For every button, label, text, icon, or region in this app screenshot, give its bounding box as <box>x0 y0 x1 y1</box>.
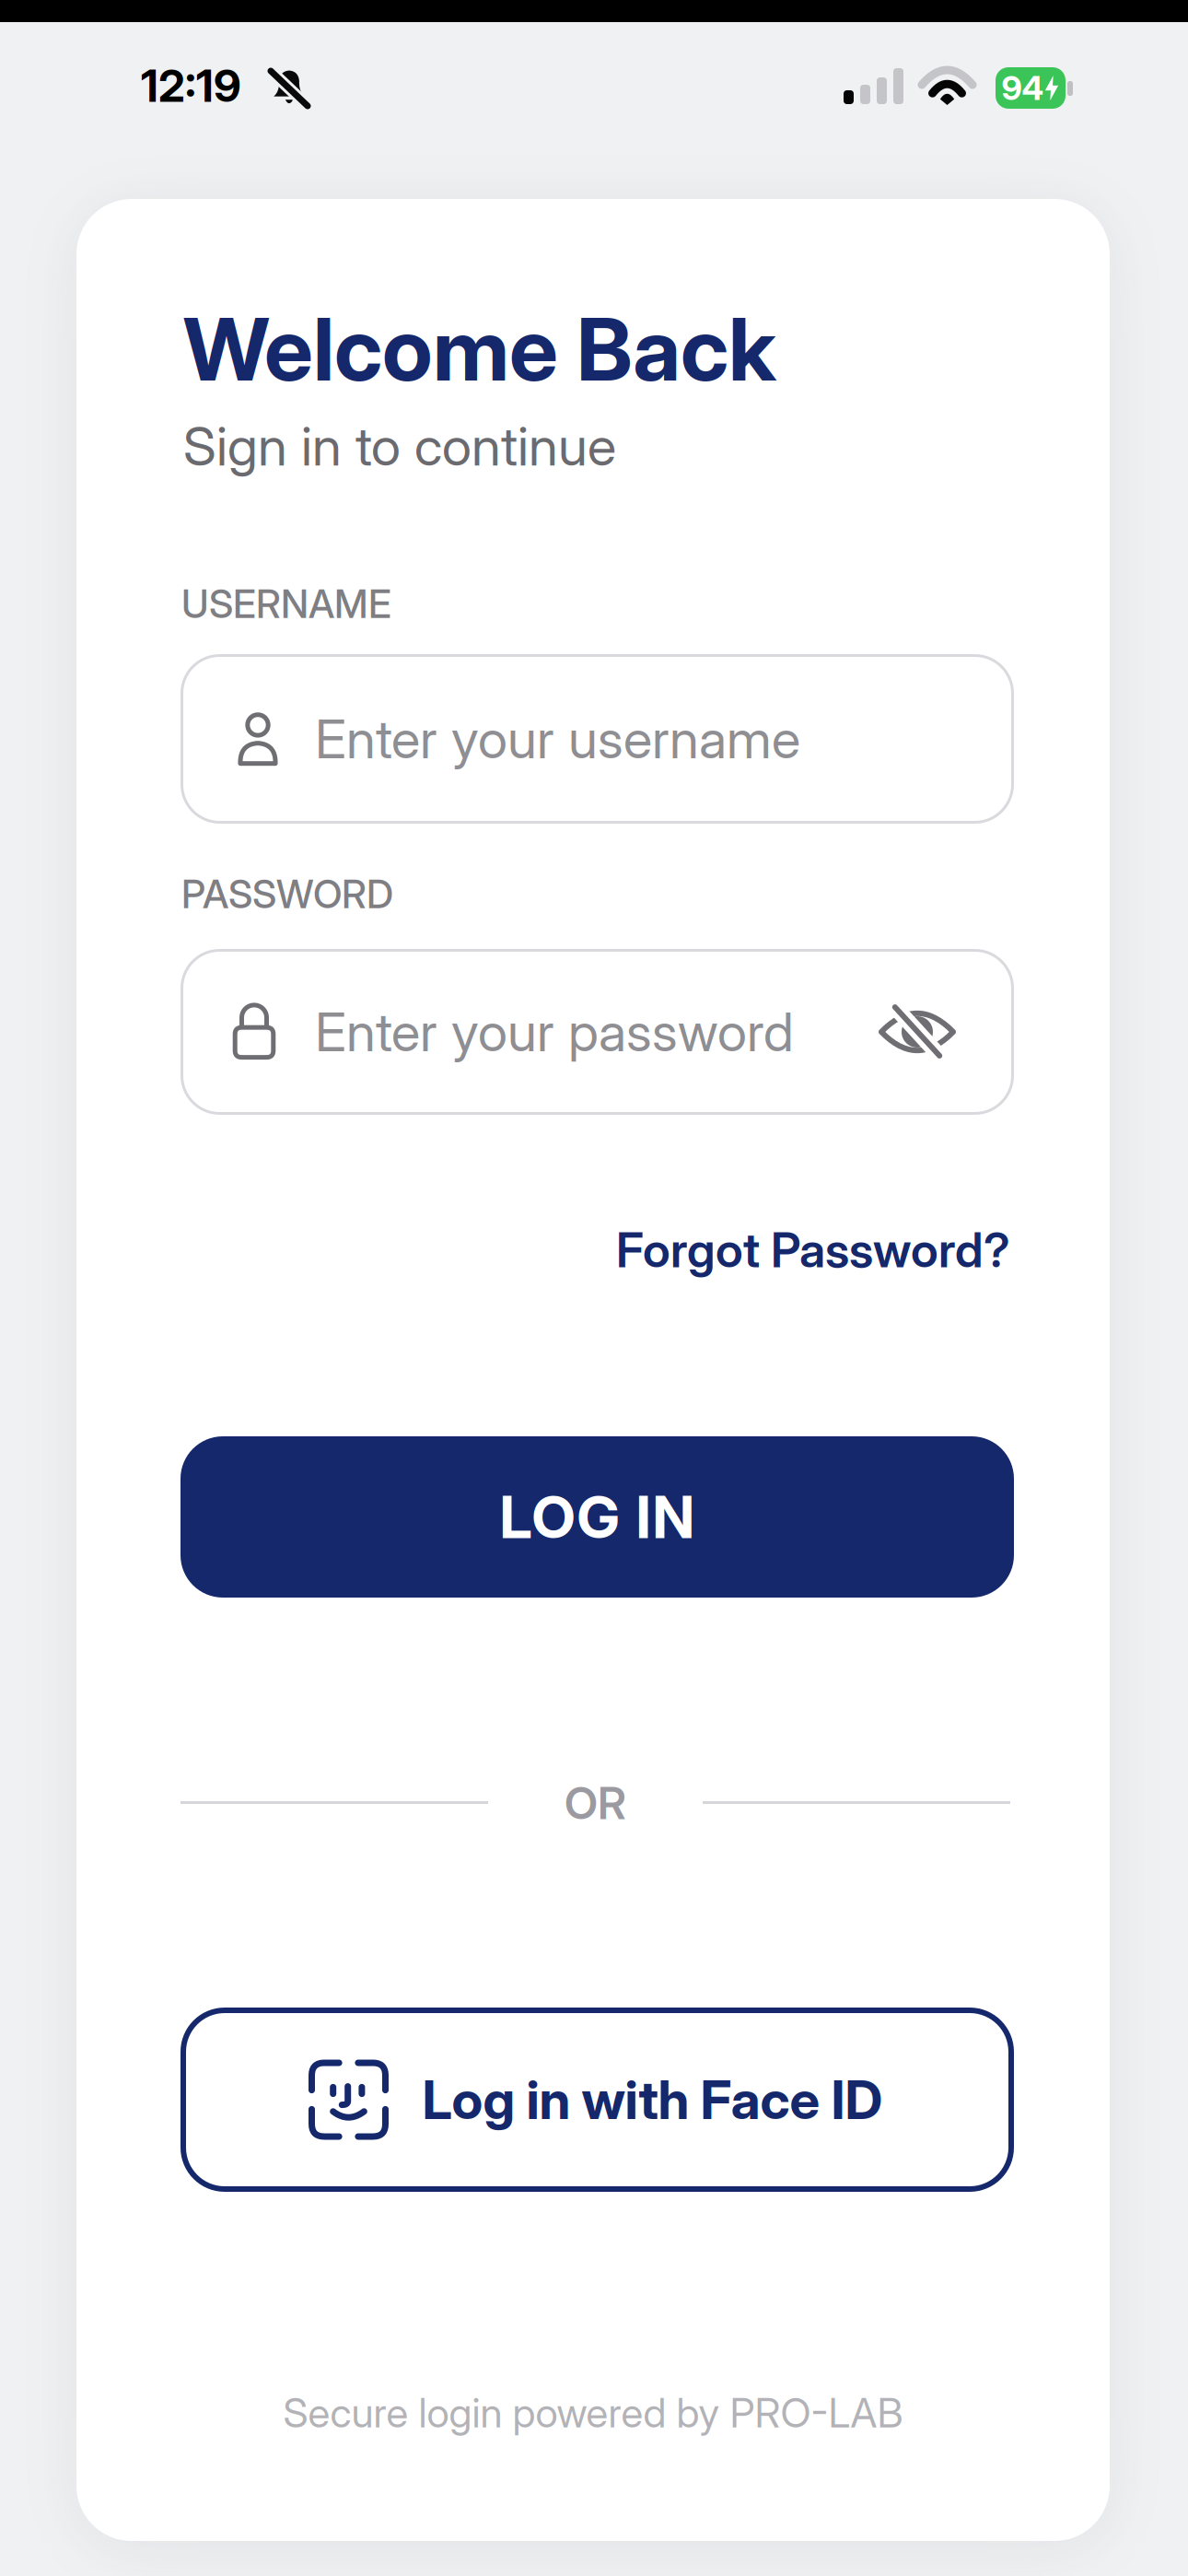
staticText: Enter your username <box>315 707 800 771</box>
staticText: PASSWORD <box>181 871 393 917</box>
staticText: Log in with Face ID <box>422 2067 883 2132</box>
staticText: Welcome Back <box>183 297 776 401</box>
staticText: 12:19 <box>141 59 241 112</box>
button[interactable]: Enter your username <box>181 654 1014 824</box>
staticText: Sign in to continue <box>183 414 616 478</box>
staticText: Secure login powered by PRO-LAB <box>283 2388 903 2437</box>
staticText: Enter your password <box>315 1000 794 1064</box>
staticText: OR <box>565 1776 626 1830</box>
staticText: USERNAME <box>181 580 391 627</box>
staticText: Forgot Password? <box>616 1221 1010 1279</box>
button[interactable]: Log in with Face ID <box>181 2008 1014 2192</box>
button[interactable]: LOG IN <box>181 1436 1014 1598</box>
staticText: LOG IN <box>500 1482 695 1552</box>
button[interactable]: Forgot Password? <box>616 1221 1010 1279</box>
staticText: 94 <box>1002 68 1044 108</box>
button[interactable]: Enter your password <box>181 949 1014 1115</box>
button[interactable]: Show password <box>881 1010 953 1054</box>
